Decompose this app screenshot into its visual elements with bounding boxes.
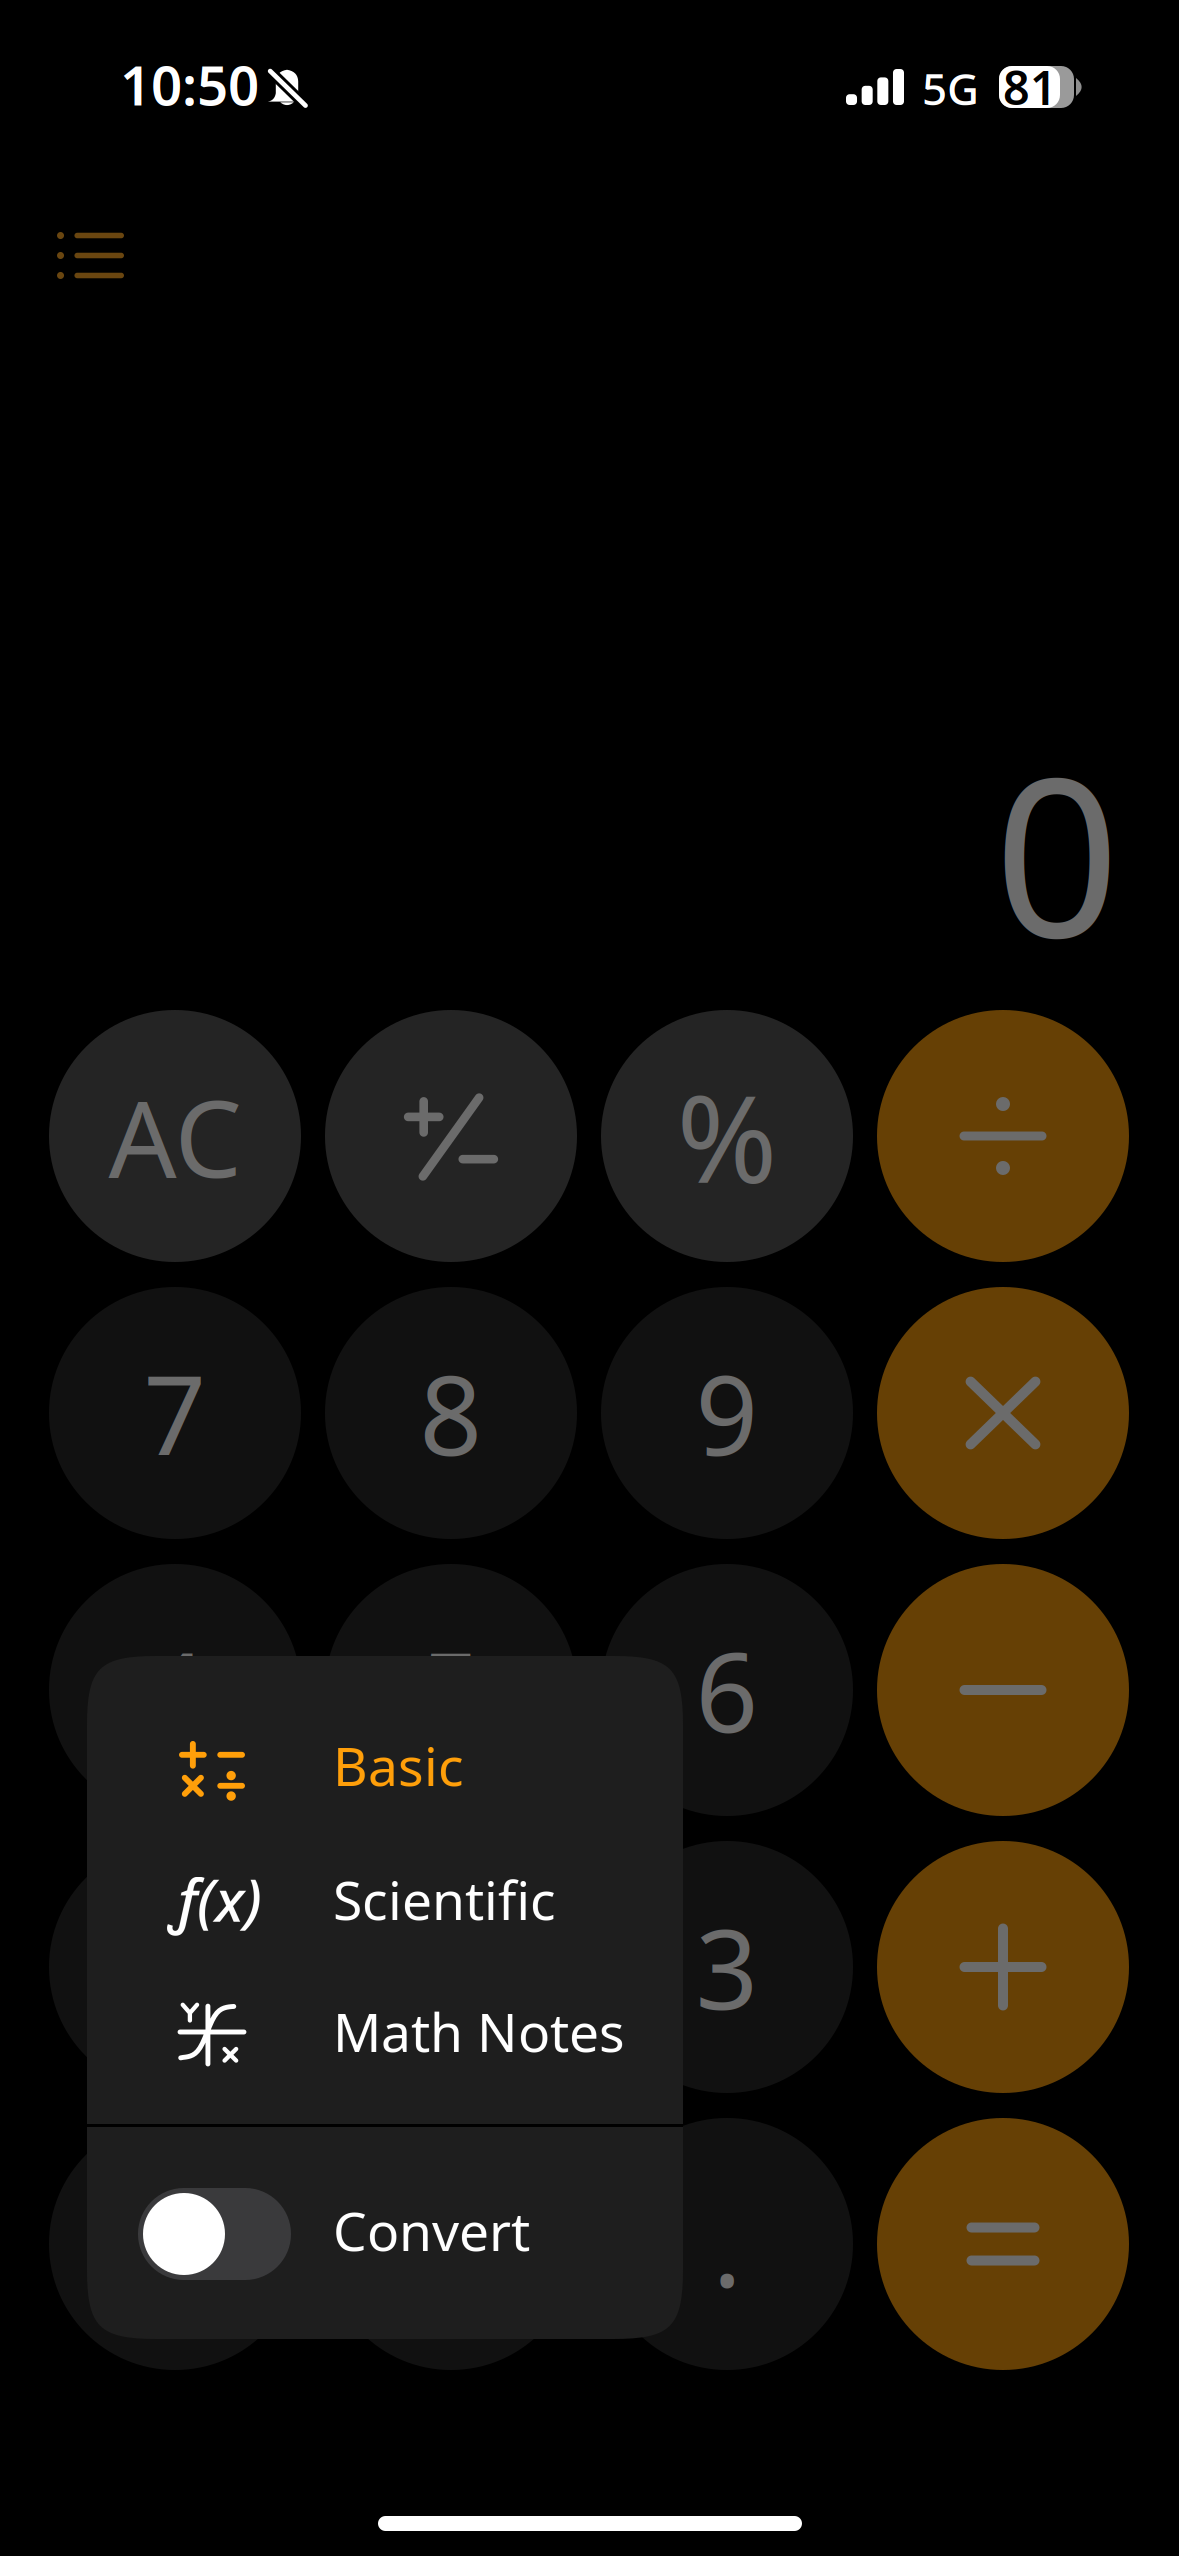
staticText: 5 [419,1617,482,1763]
button[interactable]: Decimal point [325,2118,577,2370]
staticText: ƒ(x) [172,1860,262,1938]
staticText: Convert [333,2195,530,2266]
button[interactable]: Multiply [877,1287,1129,1539]
staticText: 9 [695,1340,758,1486]
staticText: 0 [143,2171,206,2317]
button[interactable]: Math Notes [87,1969,683,2100]
staticText: 3 [695,1894,758,2040]
button[interactable]: 8 [325,1287,577,1539]
staticText: 81 [1003,56,1057,118]
staticText: 4 [143,1617,206,1763]
button[interactable]: Calculator modes [12,190,162,320]
button[interactable]: Basic [87,1706,683,1837]
button[interactable]: Subtract [877,1564,1129,1816]
staticText: · [436,2171,465,2317]
button[interactable]: 5 [325,1564,577,1816]
button[interactable]: Convert [87,2187,683,2318]
button[interactable]: Plus minus [325,1010,577,1262]
button[interactable]: 6 [601,1564,853,1816]
button[interactable]: Percent [601,1010,853,1262]
staticText: 7 [143,1340,206,1486]
staticText: 0 [994,706,1120,998]
button[interactable]: 2 [325,1841,577,2093]
button[interactable]: 1 [49,1841,301,2093]
button[interactable]: 0 [49,2118,301,2370]
staticText: Math Notes [333,1996,625,2067]
button[interactable]: Equals [877,2118,1129,2370]
staticText: 5G [922,59,979,117]
staticText: 8 [419,1340,482,1486]
staticText: % [676,1055,777,1216]
button[interactable]: Add [877,1841,1129,2093]
button[interactable]: Decimal point [601,2118,853,2370]
staticText: AC [108,1065,241,1207]
button[interactable]: ƒ(x) [87,1838,683,1969]
staticText: 2 [419,1894,482,2040]
staticText: Scientific [333,1864,556,1935]
staticText: 1 [143,1894,206,2040]
staticText: 10:50 [120,48,259,121]
button[interactable]: 9 [601,1287,853,1539]
button[interactable]: 7 [49,1287,301,1539]
button[interactable]: All clear [49,1010,301,1262]
button[interactable]: 4 [49,1564,301,1816]
staticText: . [712,2171,741,2317]
staticText: 6 [695,1617,758,1763]
button[interactable]: 3 [601,1841,853,2093]
button[interactable]: Divide [877,1010,1129,1262]
staticText: Basic [333,1730,464,1801]
